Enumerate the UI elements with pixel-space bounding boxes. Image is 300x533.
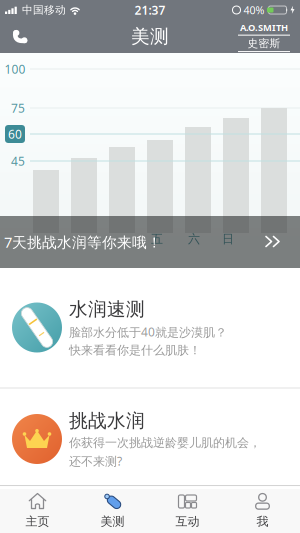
staticText: 六 — [188, 232, 200, 246]
button[interactable]: 我 — [225, 491, 300, 529]
staticText: 美测 — [131, 25, 169, 48]
staticText: 你获得一次挑战逆龄婴儿肌的机会， — [69, 435, 261, 450]
staticText: 挑战水润 — [69, 409, 145, 432]
staticText: 7天挑战水润等你来哦！ — [4, 232, 162, 252]
staticText: 主页 — [25, 514, 49, 529]
button[interactable]: 客服电话 — [0, 29, 28, 43]
staticText: 脸部水分低于40就是沙漠肌？ — [69, 324, 227, 340]
button[interactable]: 挑战水润 — [0, 409, 300, 469]
staticText: 45 — [11, 153, 25, 169]
staticText: 我 — [256, 514, 268, 529]
button[interactable]: 主页 — [0, 491, 75, 529]
staticText: A.O.SMITH — [240, 21, 288, 34]
staticText: 75 — [11, 100, 25, 116]
button[interactable]: 美测 — [75, 491, 150, 529]
staticText: 互动 — [175, 514, 199, 529]
staticText: 100 — [4, 61, 25, 77]
staticText: 还不来测? — [69, 453, 122, 469]
staticText: 水润速测 — [69, 297, 145, 321]
button[interactable]: 水润速测 — [0, 297, 300, 358]
button[interactable]: A.O.史密斯 — [238, 21, 300, 52]
staticText: 21:37 — [134, 2, 165, 18]
staticText: 日 — [222, 232, 234, 246]
staticText: 史密斯 — [247, 37, 280, 50]
staticText: 中国移动 — [22, 3, 66, 16]
staticText: 快来看看你是什么肌肤！ — [69, 343, 201, 358]
staticText: 美测 — [100, 514, 124, 529]
staticText: 60 — [8, 126, 22, 142]
button[interactable]: 互动 — [150, 491, 225, 529]
staticText: 五 — [151, 232, 163, 246]
button[interactable]: 7天挑战水润等你来哦！ — [0, 216, 300, 268]
staticText: 40% — [243, 3, 264, 17]
